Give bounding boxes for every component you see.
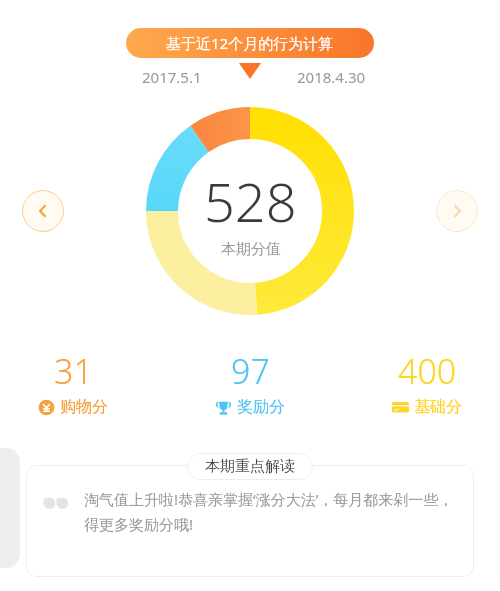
staticText: 本期分值 <box>221 240 281 259</box>
staticText: 2018.4.30 <box>297 67 366 87</box>
button[interactable]: 97 <box>205 346 295 419</box>
staticText: 基础分 <box>414 397 462 417</box>
button[interactable]: 31 <box>28 346 118 419</box>
button[interactable]: Previous period <box>22 190 64 232</box>
button[interactable]: 400 <box>382 346 472 419</box>
staticText: 基于近12个月的行为计算 <box>166 33 334 53</box>
staticText: 淘气值上升啦!恭喜亲掌握‘涨分大法’，每月都来剁一些，得更多奖励分哦! <box>84 489 460 534</box>
staticText: 97 <box>231 348 270 394</box>
staticText: 本期重点解读 <box>205 457 295 476</box>
staticText: 购物分 <box>60 397 108 417</box>
staticText: 2017.5.1 <box>142 67 202 87</box>
button[interactable]: Next period <box>436 190 478 232</box>
button[interactable]: 淘气值上升啦!恭喜亲掌握‘涨分大法’，每月都来剁一些，得更多奖励分哦! <box>26 465 474 577</box>
staticText: 400 <box>398 348 457 394</box>
staticText: 奖励分 <box>237 397 285 417</box>
staticText: 528 <box>204 164 297 238</box>
staticText: 31 <box>54 348 93 394</box>
